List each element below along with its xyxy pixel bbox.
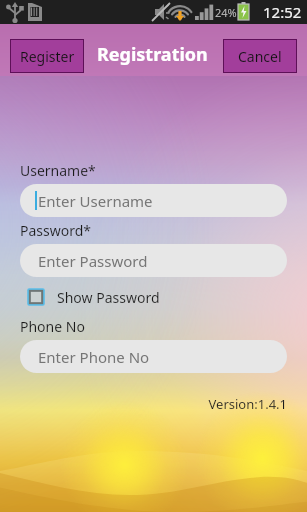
staticText: 12:52	[263, 2, 302, 22]
staticText: Password*	[20, 221, 92, 240]
button[interactable]: Show Password	[20, 286, 160, 308]
staticText: Registration	[97, 42, 208, 67]
button[interactable]: Cancel	[223, 39, 297, 73]
staticText: Phone No	[20, 317, 85, 336]
button[interactable]: Register	[10, 39, 84, 73]
staticText: 24%	[215, 5, 237, 20]
staticText: Enter Username	[38, 191, 153, 211]
staticText: Enter Password	[38, 251, 148, 271]
staticText: Show Password	[57, 288, 160, 307]
button[interactable]: Enter Phone No	[20, 340, 287, 373]
staticText: Version:1.4.1	[20, 395, 287, 413]
button[interactable]: Enter Username	[20, 184, 287, 217]
staticText: Register	[20, 47, 75, 66]
staticText: Cancel	[238, 47, 282, 66]
staticText: Username*	[20, 161, 96, 180]
staticText: Enter Phone No	[38, 347, 150, 367]
button[interactable]: Enter Password	[20, 244, 287, 277]
